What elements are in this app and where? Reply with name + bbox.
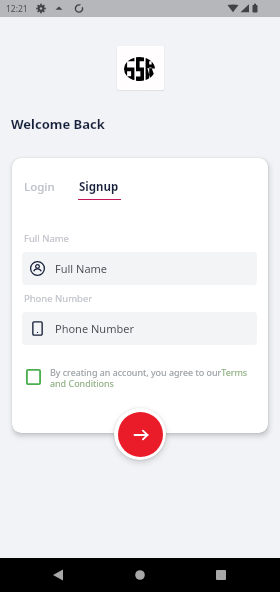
staticText: 12:21	[6, 3, 28, 15]
staticText: Login	[24, 179, 55, 195]
button[interactable]: Home	[126, 561, 154, 589]
button[interactable]: Recent apps	[207, 561, 235, 589]
button[interactable]: Login	[20, 175, 59, 199]
staticText: Phone Number	[55, 321, 134, 336]
button[interactable]: Continue	[118, 412, 163, 457]
staticText: Full Name	[24, 232, 69, 245]
staticText: Signup	[79, 179, 119, 195]
staticText: Welcome Back	[11, 115, 105, 133]
staticText: By creating an account, you agree to our…	[50, 366, 260, 389]
button[interactable]: Phone Number	[22, 312, 257, 345]
button[interactable]: Full Name	[22, 252, 257, 285]
button[interactable]: Back	[44, 561, 72, 589]
button[interactable]: Signup	[75, 175, 123, 200]
staticText: Full Name	[55, 261, 108, 276]
staticText: Phone Number	[24, 292, 93, 305]
button[interactable]: By creating an account, you agree to our…	[26, 366, 260, 389]
